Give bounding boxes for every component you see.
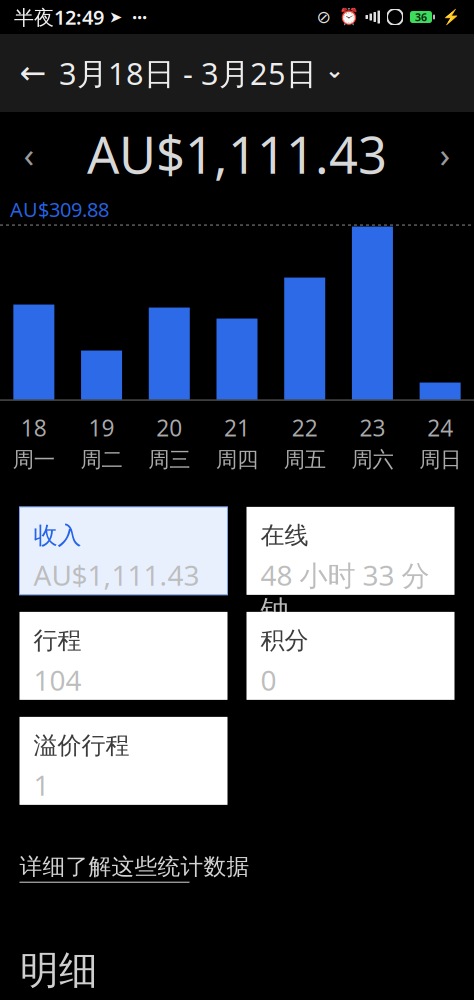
staticText: ➤ — [104, 8, 122, 26]
staticText: AU$309.88 — [10, 196, 109, 223]
button[interactable]: 行程 — [19, 612, 227, 700]
staticText: ··· — [122, 5, 147, 29]
button[interactable]: 上一周 — [0, 118, 58, 190]
staticText: 0 — [260, 661, 276, 698]
staticText: ⏰ — [338, 8, 358, 26]
staticText: 104 — [33, 661, 81, 698]
button[interactable]: 在线 — [246, 507, 454, 595]
staticText: 周五 — [284, 447, 326, 473]
staticText: 收入 — [33, 521, 81, 550]
staticText: 周日 — [419, 447, 461, 473]
staticText: 在线 — [260, 521, 308, 550]
staticText: 周二 — [81, 447, 123, 473]
staticText: ⚡ — [442, 9, 460, 25]
staticText: 1 — [33, 766, 49, 803]
button[interactable]: 3月18日 - 3月25日 — [55, 48, 348, 98]
staticText: 24 — [427, 413, 453, 443]
button[interactable]: 返回 — [11, 48, 55, 98]
staticText: 20 — [156, 413, 182, 443]
button[interactable]: 积分 — [246, 612, 454, 700]
staticText: 周四 — [216, 447, 258, 473]
button[interactable]: 详细了解这些统计数据 — [19, 853, 249, 883]
staticText: 48 小时 33 分钟 — [260, 556, 429, 628]
staticText: 22 — [292, 413, 318, 443]
button[interactable]: 收入 — [19, 507, 227, 595]
button[interactable]: 溢价行程 — [19, 717, 227, 805]
staticText: AU$1,111.43 — [33, 556, 199, 593]
staticText: › — [439, 131, 450, 177]
staticText: 21 — [224, 413, 250, 443]
staticText: 行程 — [33, 626, 81, 655]
staticText: 半夜12:49 — [14, 4, 104, 30]
staticText: 23 — [359, 413, 385, 443]
staticText: ⊘ — [316, 7, 331, 27]
staticText: 详细了解这些统计数据 — [19, 853, 249, 881]
staticText: AU$1,111.43 — [87, 120, 387, 188]
staticText: 周三 — [148, 447, 190, 473]
staticText: 36 — [415, 10, 427, 24]
staticText: 3月18日 - 3月25日 — [59, 53, 317, 93]
staticText: 周一 — [13, 447, 55, 473]
staticText: ⌄ — [325, 57, 344, 83]
staticText: ‹ — [23, 131, 34, 177]
staticText: ← — [19, 55, 46, 91]
staticText: 积分 — [260, 626, 308, 655]
staticText: 溢价行程 — [33, 731, 129, 760]
staticText: 周六 — [351, 447, 393, 473]
staticText: 明细 — [20, 946, 98, 994]
staticText: 18 — [21, 413, 47, 443]
staticText: 19 — [89, 413, 115, 443]
button[interactable]: 下一周 — [416, 118, 474, 190]
